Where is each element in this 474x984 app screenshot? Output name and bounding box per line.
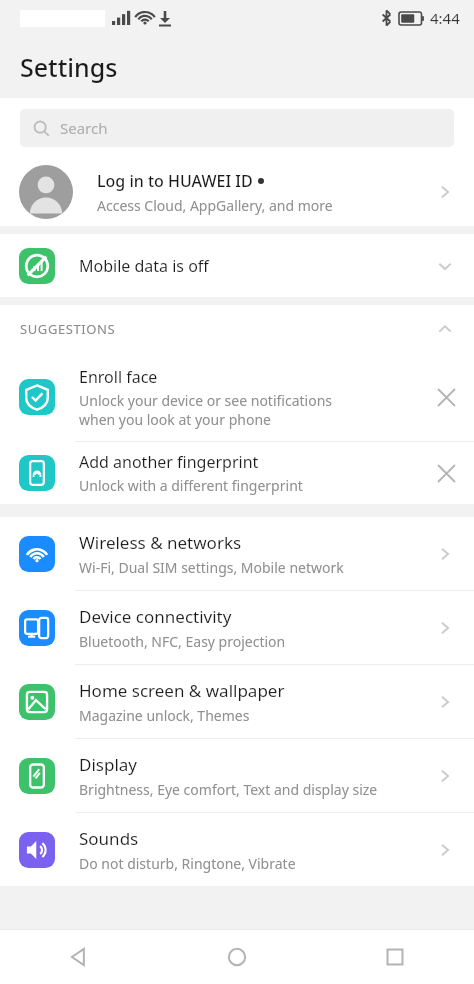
staticText: Wireless & networks: [79, 531, 242, 554]
button[interactable]: Home: [158, 930, 316, 984]
button[interactable]: Device connectivity: [0, 591, 474, 664]
staticText: Unlock your device or see notifications: [79, 391, 333, 410]
staticText: Sounds: [79, 827, 139, 850]
other: Open: [434, 691, 456, 713]
other: Collapse: [434, 318, 456, 340]
button[interactable]: Display: [0, 739, 474, 812]
other: Open: [434, 543, 456, 565]
staticText: Device connectivity: [79, 605, 232, 628]
staticText: Settings: [20, 50, 118, 84]
other: Expand: [434, 255, 456, 277]
other: Open: [434, 839, 456, 861]
staticText: Unlock with a different fingerprint: [79, 476, 303, 495]
button[interactable]: Add another fingerprint: [0, 442, 474, 504]
button[interactable]: Sounds: [0, 813, 474, 886]
button[interactable]: Dismiss Enroll face: [426, 377, 466, 417]
staticText: Enroll face: [79, 366, 158, 388]
staticText: Display: [79, 753, 137, 776]
other: Open: [434, 617, 456, 639]
button[interactable]: Enroll face: [0, 353, 474, 441]
button[interactable]: Log in to HUAWEI ID: [0, 158, 474, 226]
staticText: when you look at your phone: [79, 410, 271, 429]
staticText: Brightness, Eye comfort, Text and displa…: [79, 780, 378, 799]
button[interactable]: SUGGESTIONS: [0, 305, 474, 353]
button[interactable]: Wireless & networks: [0, 517, 474, 590]
staticText: Home screen & wallpaper: [79, 679, 285, 702]
button[interactable]: Back: [0, 930, 158, 984]
button[interactable]: Search: [20, 109, 454, 147]
button[interactable]: Home screen & wallpaper: [0, 665, 474, 738]
staticText: Magazine unlock, Themes: [79, 706, 250, 725]
staticText: Wi-Fi, Dual SIM settings, Mobile network: [79, 558, 344, 577]
staticText: Access Cloud, AppGallery, and more: [97, 196, 333, 215]
staticText: SUGGESTIONS: [20, 320, 434, 338]
button[interactable]: Mobile data is off: [0, 234, 474, 297]
other: Open: [434, 765, 456, 787]
staticText: 4:44: [430, 8, 460, 28]
button[interactable]: Recent apps: [316, 930, 474, 984]
staticText: Do not disturb, Ringtone, Vibrate: [79, 854, 296, 873]
staticText: Mobile data is off: [79, 255, 434, 277]
staticText: Search: [60, 118, 108, 138]
button[interactable]: Dismiss Add another fingerprint: [426, 453, 466, 493]
other: Open: [434, 181, 456, 203]
staticText: Add another fingerprint: [79, 451, 259, 473]
staticText: Bluetooth, NFC, Easy projection: [79, 632, 286, 651]
staticText: Log in to HUAWEI ID: [97, 170, 253, 192]
